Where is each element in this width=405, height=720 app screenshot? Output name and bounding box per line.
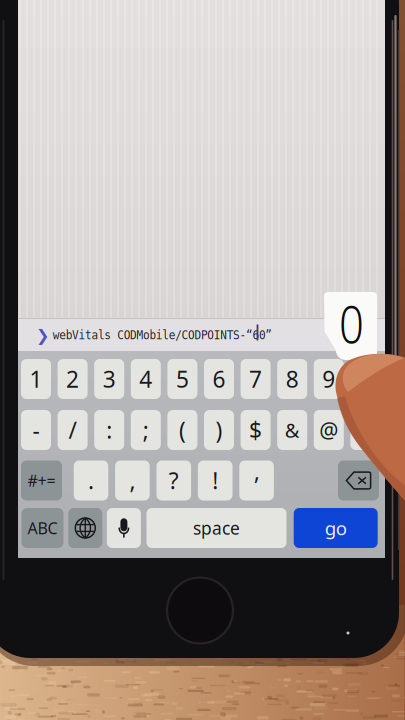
staticText: space <box>193 516 240 539</box>
staticText: , <box>129 465 135 495</box>
staticText: ) <box>215 415 222 445</box>
staticText: 9 <box>322 364 335 394</box>
staticText: “ <box>361 420 369 450</box>
staticText: @ <box>319 416 338 444</box>
button[interactable]: $ <box>241 410 271 450</box>
button[interactable]: ❯ <box>23 320 380 350</box>
button[interactable]: ) <box>204 410 234 450</box>
staticText: - <box>32 415 39 445</box>
staticText: 6 <box>212 364 225 394</box>
staticText: 0 <box>337 290 366 357</box>
staticText: 4 <box>139 364 152 394</box>
button[interactable]: - <box>21 410 51 450</box>
button[interactable]: ( <box>167 410 197 450</box>
button[interactable]: Home <box>167 577 233 643</box>
button[interactable]: & <box>277 410 307 450</box>
button[interactable]: ABC <box>21 508 63 548</box>
button[interactable]: Dictation <box>107 508 141 548</box>
button[interactable]: ! <box>198 460 232 500</box>
button[interactable]: ? <box>156 460 191 500</box>
button[interactable]: 9 <box>314 359 344 399</box>
button[interactable]: / <box>58 410 88 450</box>
staticText: 0 <box>359 364 372 394</box>
staticText: ? <box>169 465 179 495</box>
button[interactable]: 0 <box>350 359 380 399</box>
button[interactable]: : <box>94 410 124 450</box>
button[interactable]: 7 <box>241 359 271 399</box>
button[interactable]: #+= <box>21 460 62 500</box>
staticText: ( <box>179 415 186 445</box>
staticText: go <box>325 516 347 540</box>
button[interactable]: “ <box>350 410 380 450</box>
staticText: & <box>285 417 300 443</box>
button[interactable]: space <box>146 508 286 548</box>
button[interactable]: go <box>294 508 378 548</box>
button[interactable]: 1 <box>21 359 51 399</box>
button[interactable]: Delete <box>338 460 379 500</box>
button[interactable]: Next keyboard <box>68 508 102 548</box>
button[interactable]: 2 <box>58 359 88 399</box>
button[interactable]: 8 <box>277 359 307 399</box>
staticText: ’ <box>255 470 259 500</box>
button[interactable]: 3 <box>94 359 124 399</box>
staticText: ❯ <box>36 326 49 345</box>
button[interactable]: . <box>74 460 108 500</box>
button[interactable]: ; <box>131 410 161 450</box>
button[interactable]: ’ <box>239 460 274 500</box>
staticText: webVitals CODMobile/CODPOINTS-“60” <box>53 328 291 342</box>
staticText: . <box>88 465 94 495</box>
button[interactable]: , <box>115 460 150 500</box>
staticText: 2 <box>66 364 79 394</box>
staticText: 5 <box>176 364 189 394</box>
button[interactable]: 5 <box>167 359 197 399</box>
staticText: 1 <box>29 364 42 394</box>
staticText: 3 <box>103 364 116 394</box>
button[interactable]: @ <box>314 410 344 450</box>
staticText: ! <box>212 465 218 495</box>
staticText: 7 <box>249 364 262 394</box>
staticText: : <box>106 415 112 445</box>
button[interactable]: 4 <box>131 359 161 399</box>
staticText: #+= <box>27 470 55 491</box>
staticText: $ <box>249 415 262 445</box>
staticText: / <box>69 415 77 445</box>
staticText: ; <box>143 415 149 445</box>
staticText: 8 <box>286 364 299 394</box>
staticText: ABC <box>27 517 57 539</box>
button[interactable]: 6 <box>204 359 234 399</box>
